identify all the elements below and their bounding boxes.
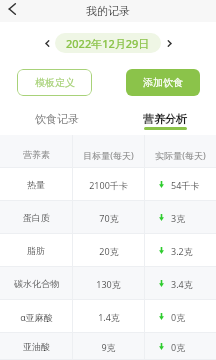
staticText: 54千卡 — [171, 179, 200, 191]
staticText: 碳水化合物 — [14, 278, 59, 289]
button[interactable]: 饮食记录 — [3, 112, 111, 130]
staticText: 模板定义 — [35, 76, 75, 89]
staticText: 130克 — [96, 278, 121, 290]
staticText: 营养素 — [23, 149, 50, 160]
staticText: 3.4克 — [171, 278, 193, 290]
button[interactable]: Previous day — [40, 33, 54, 53]
staticText: 我的记录 — [86, 4, 130, 18]
staticText: 饮食记录 — [35, 112, 79, 126]
button[interactable]: 添加饮食 — [126, 69, 200, 96]
button[interactable]: Next day — [162, 33, 176, 53]
staticText: 实际量(每天) — [155, 149, 206, 161]
staticText: 营养分析 — [143, 112, 187, 126]
staticText: 20克 — [99, 245, 119, 257]
staticText: 9克 — [101, 341, 116, 353]
staticText: 亚油酸 — [23, 341, 50, 352]
staticText: 2100千卡 — [89, 179, 128, 191]
staticText: 脂肪 — [27, 245, 45, 256]
button[interactable]: 营养分析 — [111, 112, 216, 130]
staticText: 3.2克 — [171, 245, 193, 257]
staticText: 添加饮食 — [143, 76, 183, 89]
staticText: 蛋白质 — [23, 212, 50, 223]
staticText: 0克 — [171, 311, 186, 323]
button[interactable]: 模板定义 — [17, 69, 92, 96]
staticText: 2022年12月29日 — [66, 36, 150, 51]
staticText: 1.4克 — [98, 311, 120, 323]
button[interactable]: Back — [0, 0, 24, 22]
staticText: 0克 — [171, 341, 186, 353]
staticText: 热量 — [27, 179, 45, 190]
staticText: α亚麻酸 — [20, 311, 53, 323]
staticText: 目标量(每天) — [83, 149, 134, 161]
staticText: 70克 — [99, 212, 119, 224]
button[interactable]: 2022年12月29日 — [55, 33, 161, 53]
staticText: 3克 — [171, 212, 186, 224]
